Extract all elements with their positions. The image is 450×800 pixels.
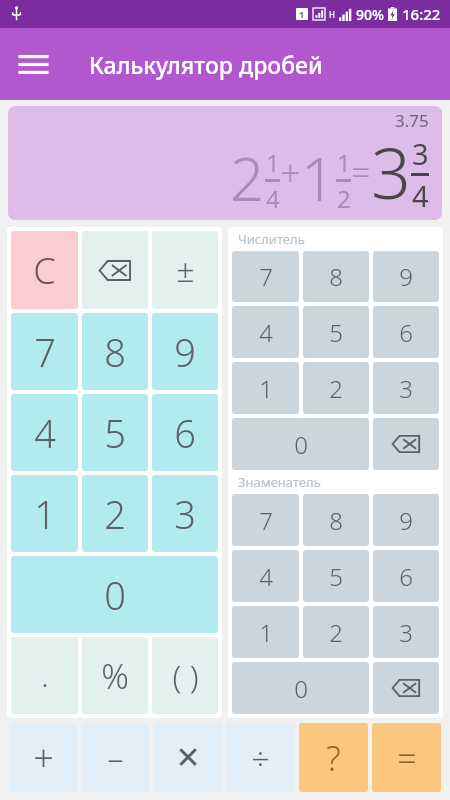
- staticText: ✕: [175, 740, 201, 775]
- staticText: 3: [412, 134, 429, 173]
- button[interactable]: Меню: [10, 41, 56, 87]
- staticText: 1: [337, 146, 351, 179]
- staticText: +: [280, 148, 301, 197]
- staticText: 6: [174, 407, 196, 459]
- staticText: 3: [399, 616, 413, 649]
- staticText: ±: [176, 248, 195, 292]
- staticText: ( ): [172, 654, 199, 698]
- staticText: 0: [294, 672, 308, 705]
- staticText: =: [351, 149, 371, 195]
- button[interactable]: ±: [152, 231, 218, 309]
- staticText: 2: [329, 616, 343, 649]
- staticText: 9: [174, 326, 196, 378]
- staticText: 8: [104, 326, 126, 378]
- button[interactable]: 8: [303, 494, 369, 546]
- staticText: 1: [259, 372, 273, 405]
- button[interactable]: –: [81, 723, 149, 792]
- button[interactable]: 2: [82, 475, 148, 552]
- button[interactable]: ÷: [226, 723, 295, 792]
- staticText: 4: [412, 176, 429, 215]
- staticText: 7: [34, 326, 56, 378]
- staticText: 9: [399, 504, 413, 537]
- staticText: 8: [329, 504, 343, 537]
- staticText: 2: [230, 137, 265, 219]
- button[interactable]: 9: [373, 494, 439, 546]
- button[interactable]: 4: [11, 394, 78, 471]
- button[interactable]: 6: [373, 550, 439, 602]
- button[interactable]: 1: [11, 475, 78, 552]
- staticText: 1: [34, 488, 56, 540]
- staticText: 4: [34, 407, 56, 459]
- button[interactable]: 8: [303, 251, 369, 302]
- staticText: 3: [174, 488, 196, 540]
- button[interactable]: 0: [11, 556, 218, 633]
- button[interactable]: 5: [303, 550, 369, 602]
- staticText: 5: [104, 407, 126, 459]
- button[interactable]: .: [11, 637, 78, 714]
- button[interactable]: 1: [232, 606, 299, 658]
- button[interactable]: 2: [303, 362, 369, 414]
- staticText: 2: [329, 372, 343, 405]
- staticText: 7: [259, 260, 273, 293]
- button[interactable]: ( ): [152, 637, 218, 714]
- staticText: 0: [104, 569, 126, 621]
- staticText: +: [33, 733, 54, 782]
- button[interactable]: 7: [232, 251, 299, 302]
- staticText: .: [41, 655, 49, 696]
- staticText: 2: [337, 182, 351, 215]
- button[interactable]: Стереть: [373, 662, 439, 714]
- button[interactable]: 6: [152, 394, 218, 471]
- button[interactable]: Стереть: [82, 231, 148, 309]
- button[interactable]: ?: [299, 723, 368, 792]
- button[interactable]: 9: [152, 313, 218, 390]
- staticText: 1: [259, 616, 273, 649]
- staticText: 1: [301, 137, 336, 219]
- staticText: Калькулятор дробей: [89, 49, 323, 80]
- staticText: ÷: [251, 736, 270, 780]
- staticText: C: [33, 246, 56, 295]
- button[interactable]: 2: [303, 606, 369, 658]
- staticText: 6: [399, 560, 413, 593]
- staticText: –: [107, 736, 124, 780]
- staticText: 16:22: [402, 4, 441, 24]
- staticText: 0: [294, 428, 308, 461]
- button[interactable]: 1: [232, 362, 299, 414]
- button[interactable]: 5: [82, 394, 148, 471]
- staticText: Числитель: [238, 230, 305, 248]
- button[interactable]: 8: [82, 313, 148, 390]
- button[interactable]: 7: [11, 313, 78, 390]
- button[interactable]: 3: [152, 475, 218, 552]
- button[interactable]: 5: [303, 306, 369, 358]
- button[interactable]: 4: [232, 550, 299, 602]
- staticText: Знаменатель: [238, 473, 321, 491]
- staticText: 4: [259, 560, 273, 593]
- staticText: 1: [266, 146, 280, 179]
- staticText: ?: [326, 735, 341, 781]
- button[interactable]: 3: [373, 362, 439, 414]
- staticText: 5: [329, 560, 343, 593]
- staticText: 90%: [356, 5, 384, 24]
- button[interactable]: +: [9, 723, 77, 792]
- button[interactable]: 9: [373, 251, 439, 302]
- button[interactable]: 7: [232, 494, 299, 546]
- button[interactable]: =: [372, 723, 441, 792]
- staticText: 3.75: [395, 109, 429, 132]
- staticText: 3: [371, 124, 411, 219]
- button[interactable]: 4: [232, 306, 299, 358]
- button[interactable]: 0: [232, 418, 369, 470]
- staticText: 7: [259, 504, 273, 537]
- button[interactable]: 0: [232, 662, 369, 714]
- staticText: 2: [104, 488, 126, 540]
- staticText: 6: [399, 316, 413, 349]
- button[interactable]: %: [82, 637, 148, 714]
- staticText: =: [397, 735, 417, 781]
- button[interactable]: 6: [373, 306, 439, 358]
- staticText: 9: [399, 260, 413, 293]
- button[interactable]: Стереть: [373, 418, 439, 470]
- staticText: 1: [299, 8, 305, 20]
- button[interactable]: ✕: [153, 723, 222, 792]
- staticText: 4: [266, 182, 280, 215]
- button[interactable]: 3: [373, 606, 439, 658]
- button[interactable]: C: [11, 231, 78, 309]
- staticText: %: [101, 653, 129, 699]
